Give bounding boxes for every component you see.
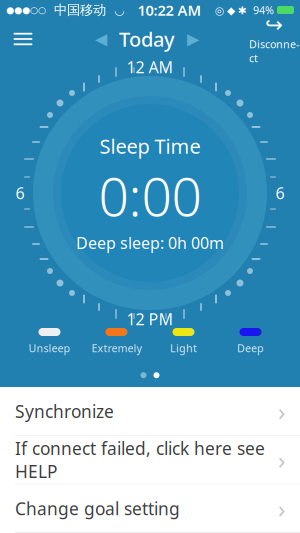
staticText: › xyxy=(278,395,285,427)
staticText: Extremely xyxy=(91,341,141,355)
staticText: ↪ xyxy=(265,13,283,37)
button[interactable]: Previous day xyxy=(85,20,117,58)
staticText: › xyxy=(278,444,285,476)
staticText: Unsleep xyxy=(28,341,70,355)
button[interactable]: If connect failed, click here see HELP xyxy=(0,436,300,484)
staticText: If connect failed, click here see HELP xyxy=(15,437,265,483)
staticText: Sleep Time xyxy=(99,133,200,159)
staticText: Today xyxy=(119,26,175,52)
staticText: ◡ xyxy=(106,3,124,17)
staticText: 10:22 AM xyxy=(137,0,201,20)
staticText: Disconnect xyxy=(249,37,299,65)
staticText: 12 PM xyxy=(126,308,173,330)
staticText: 中国移动 xyxy=(46,2,106,18)
staticText: Deep sleep: 0h 00m xyxy=(76,232,224,253)
button[interactable]: ↪ xyxy=(248,20,300,58)
staticText: ▶ xyxy=(187,30,199,48)
staticText: 12 AM xyxy=(126,56,173,78)
button[interactable]: Next day xyxy=(177,20,209,58)
button[interactable]: Synchronize xyxy=(0,387,300,435)
staticText: ◀ xyxy=(95,30,107,48)
staticText: ●●●○○ xyxy=(6,5,46,15)
staticText: › xyxy=(278,492,285,524)
staticText: Deep xyxy=(237,341,264,355)
staticText: 6 xyxy=(15,182,24,204)
button[interactable]: Change goal setting xyxy=(0,484,300,532)
staticText: Synchronize xyxy=(15,400,114,423)
staticText: Change goal setting xyxy=(15,497,180,520)
staticText: ◎ ◆ ✱ 94% xyxy=(215,3,274,17)
staticText: 6 xyxy=(275,182,284,204)
button[interactable]: Menu xyxy=(0,20,46,58)
staticText: 0:00 xyxy=(98,160,201,231)
staticText: Light xyxy=(170,341,197,355)
